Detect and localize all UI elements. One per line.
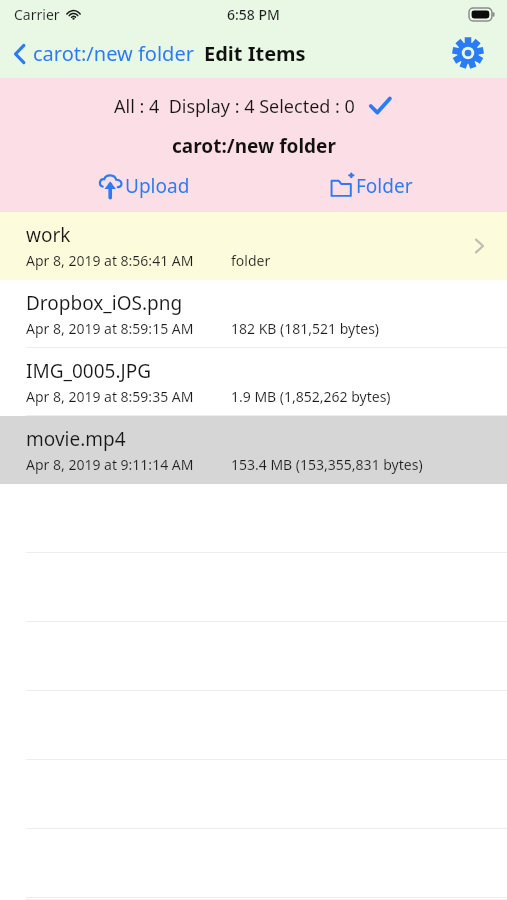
staticText: Apr 8, 2019 at 8:59:35 AM (26, 387, 194, 406)
staticText: Apr 8, 2019 at 8:59:15 AM (26, 319, 194, 338)
staticText: Upload (125, 173, 190, 199)
staticText: carot:/new folder (33, 40, 194, 67)
staticText: 6:58 PM (227, 5, 280, 24)
staticText: 153.4 MB (153,355,831 bytes) (231, 455, 423, 474)
button[interactable]: Dropbox_iOS.png (0, 280, 507, 348)
button[interactable]: Settings (451, 36, 485, 70)
button[interactable]: movie.mp4 (0, 416, 507, 484)
staticText: Edit Items (204, 40, 306, 67)
staticText: Carrier (14, 5, 60, 24)
button[interactable]: Upload (98, 173, 190, 199)
button[interactable]: carot:/new folder (12, 40, 194, 67)
button[interactable]: work (0, 212, 507, 280)
button[interactable]: Select all (367, 93, 393, 119)
staticText: All : 4 Display : 4 Selected : 0 (114, 94, 355, 119)
staticText: Dropbox_iOS.png (26, 290, 183, 316)
staticText: work (26, 222, 71, 248)
staticText: Folder (356, 173, 413, 199)
staticText: Apr 8, 2019 at 9:11:14 AM (26, 455, 194, 474)
staticText: movie.mp4 (26, 426, 126, 452)
staticText: folder (231, 251, 271, 270)
staticText: IMG_0005.JPG (26, 358, 152, 384)
button[interactable]: IMG_0005.JPG (0, 348, 507, 416)
staticText: Apr 8, 2019 at 8:56:41 AM (26, 251, 194, 270)
staticText: 182 KB (181,521 bytes) (231, 319, 380, 338)
staticText: carot:/new folder (172, 133, 336, 159)
button[interactable]: Folder (330, 173, 413, 199)
staticText: 1.9 MB (1,852,262 bytes) (231, 387, 391, 406)
